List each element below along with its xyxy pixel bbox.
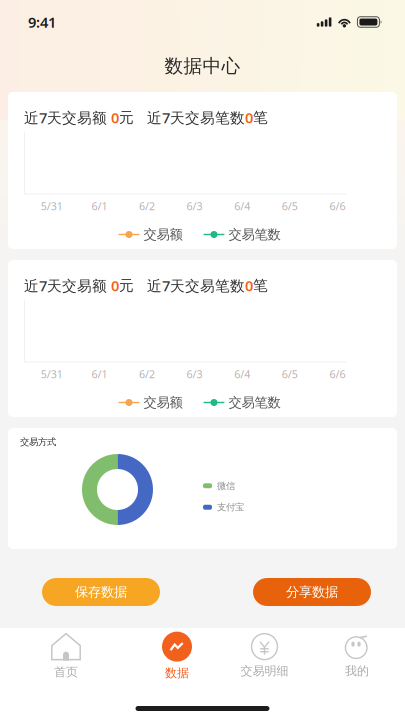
staticText: 交易额 [143,394,182,411]
staticText: 6/1 [91,199,107,213]
button[interactable]: 保存数据 [42,578,160,606]
staticText: 近7天交易笔数 [147,108,245,127]
staticText: 6/6 [329,199,345,213]
staticText: 笔 [253,276,268,294]
staticText: 9:41 [28,12,56,32]
button[interactable]: 分享数据 [253,578,371,606]
staticText: 交易额 [143,226,182,243]
staticText: 笔 [253,108,268,126]
staticText: 6/1 [91,367,107,381]
staticText: 5/31 [41,367,63,381]
staticText: 6/3 [187,367,203,381]
staticText: 6/4 [234,367,250,381]
staticText: 6/5 [282,367,298,381]
staticText: 6/3 [187,199,203,213]
staticText: 6/4 [234,199,250,213]
staticText: 0 [245,108,253,127]
staticText: 数据 [165,666,189,680]
staticText: 近7天交易额 [24,276,111,295]
button[interactable]: 首页 [0,628,137,684]
staticText: 5/31 [41,199,63,213]
staticText: 0 [111,276,119,295]
staticText: 交易方式 [20,436,56,448]
staticText: 元 [119,108,134,126]
staticText: 0 [245,276,253,295]
staticText: 我的 [345,664,369,678]
staticText: 元 [119,276,134,294]
button[interactable]: 交易明细 [217,628,312,684]
staticText: 首页 [54,665,78,679]
staticText: 保存数据 [75,584,127,600]
staticText: 微信 [217,480,235,491]
button[interactable]: 我的 [312,628,402,684]
staticText: 近7天交易笔数 [147,276,245,295]
staticText: 分享数据 [286,584,338,600]
staticText: 6/2 [139,367,155,381]
staticText: 近7天交易额 [24,108,111,127]
staticText: 数据中心 [164,54,240,77]
staticText: 支付宝 [217,501,244,513]
staticText: 6/2 [139,199,155,213]
staticText: 0 [111,108,119,127]
staticText: 交易笔数 [228,394,280,411]
staticText: 交易笔数 [228,226,280,243]
staticText: 6/5 [282,199,298,213]
button[interactable]: 数据 [137,628,217,684]
staticText: 6/6 [329,367,345,381]
staticText: 交易明细 [240,664,288,678]
